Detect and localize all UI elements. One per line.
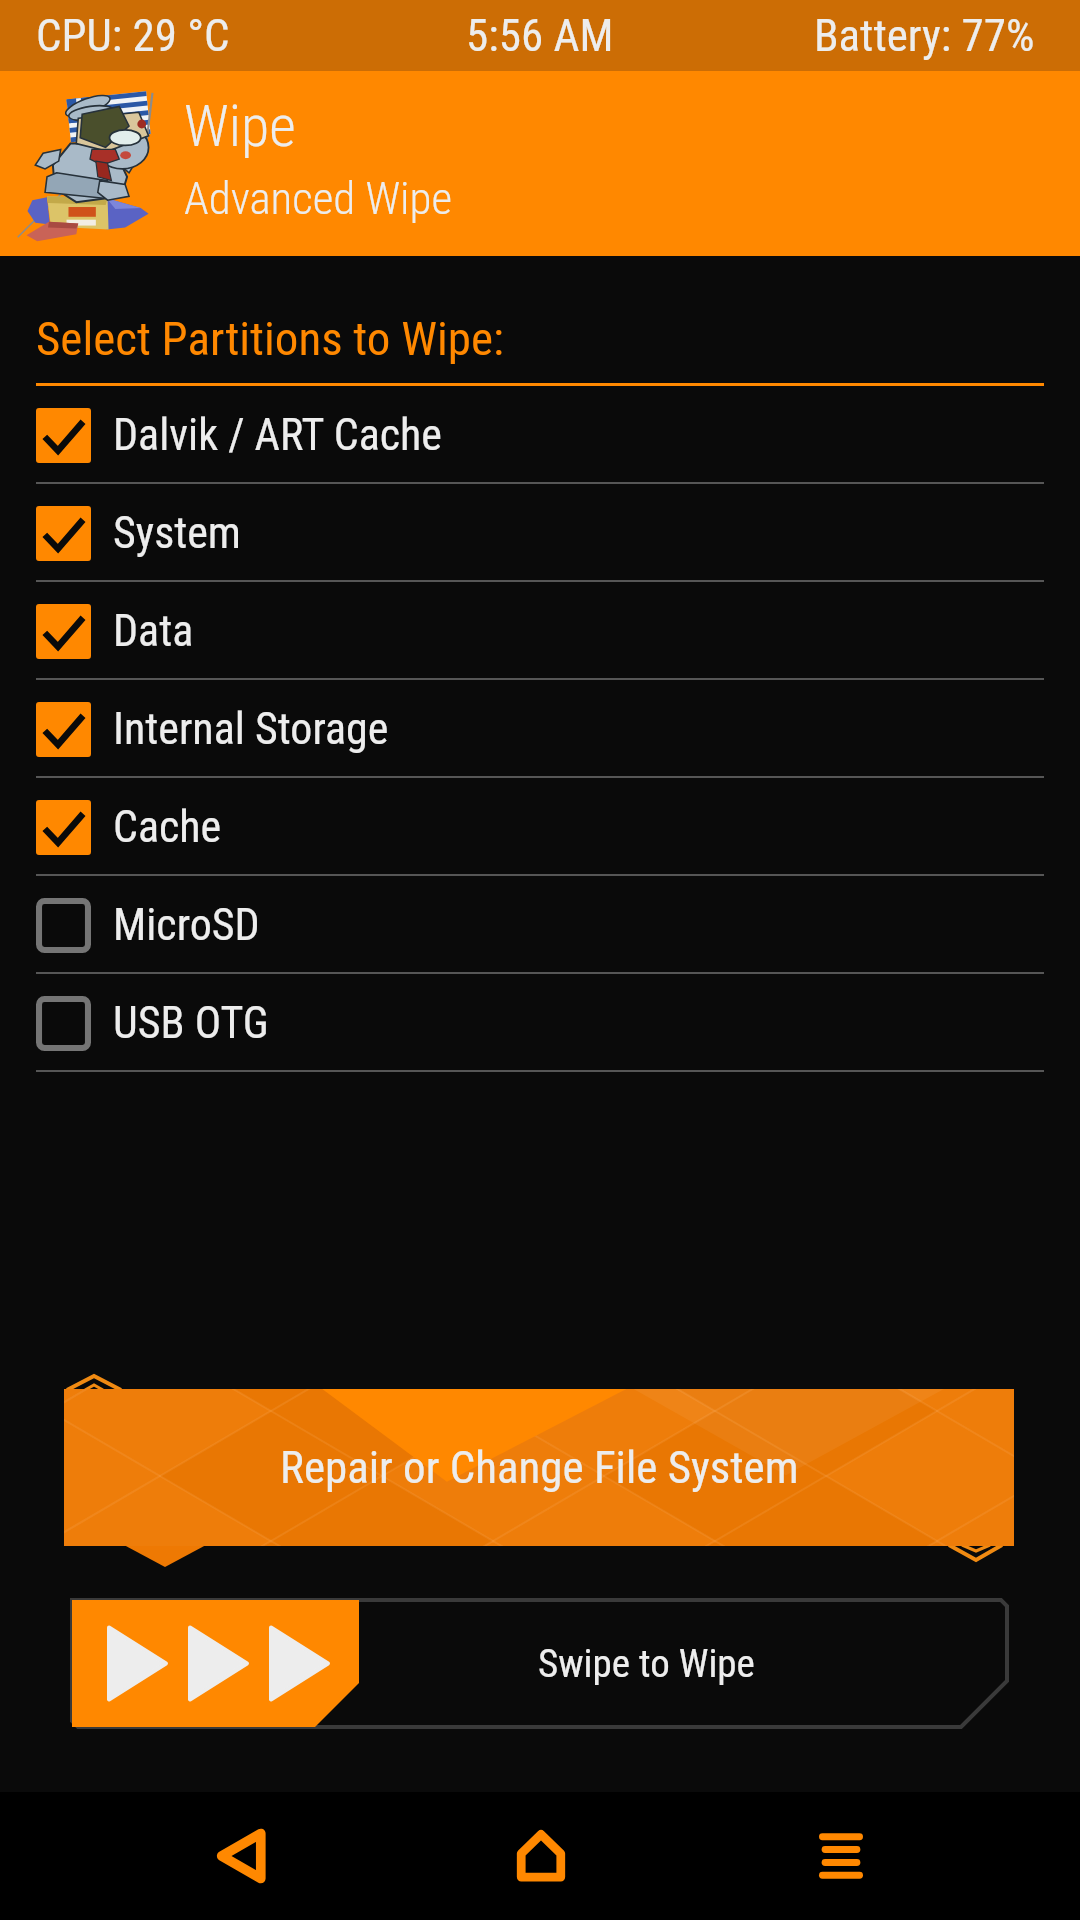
staticText: Battery: 77%	[814, 9, 1035, 62]
staticText: System	[113, 507, 241, 559]
staticText: Cache	[113, 801, 222, 853]
button[interactable]: Dalvik / ART Cache	[0, 386, 1080, 484]
button[interactable]: MicroSD	[0, 876, 1080, 974]
button[interactable]: Swipe to Wipe	[72, 1600, 359, 1727]
button[interactable]: Home	[391, 1792, 691, 1920]
staticText: Select Partitions to Wipe:	[36, 311, 504, 366]
staticText: Wipe	[184, 92, 296, 160]
button[interactable]: Data	[0, 582, 1080, 680]
staticText: Swipe to Wipe	[538, 1641, 755, 1687]
button[interactable]: Internal Storage	[0, 680, 1080, 778]
staticText: 5:56 AM	[466, 9, 614, 62]
staticText: Repair or Change File System	[280, 1441, 799, 1494]
staticText: Dalvik / ART Cache	[113, 409, 442, 461]
button[interactable]: Back	[91, 1792, 391, 1920]
staticText: MicroSD	[113, 899, 260, 951]
button[interactable]: Repair or Change File System	[64, 1389, 1014, 1546]
staticText: CPU: 29 °C	[36, 9, 230, 62]
staticText: Data	[113, 605, 194, 657]
button[interactable]: System	[0, 484, 1080, 582]
staticText: USB OTG	[113, 997, 269, 1049]
button[interactable]: Menu	[691, 1792, 991, 1920]
button[interactable]: USB OTG	[0, 974, 1080, 1072]
staticText: Advanced Wipe	[184, 172, 453, 225]
staticText: Internal Storage	[113, 703, 389, 755]
button[interactable]: Cache	[0, 778, 1080, 876]
